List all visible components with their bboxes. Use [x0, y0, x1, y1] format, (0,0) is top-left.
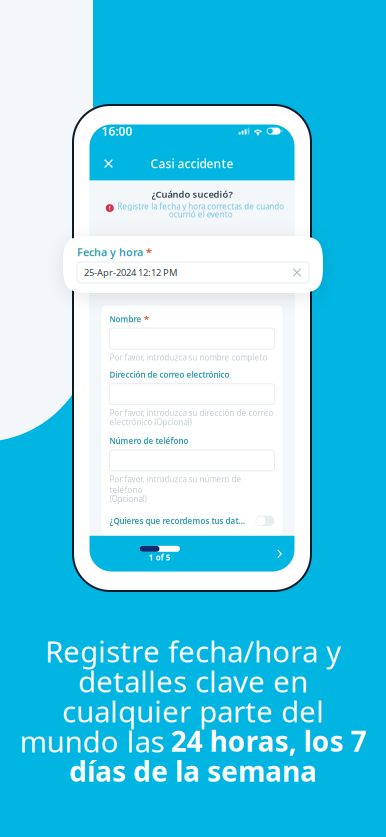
- staticText: Nombre: [109, 314, 141, 324]
- button[interactable]: ¿Quieres que recordemos tus datos?: [109, 514, 274, 528]
- staticText: mundo las: [19, 721, 164, 760]
- button[interactable]: Clear date and time: [289, 264, 305, 280]
- staticText: Dirección de correo electrónico: [109, 369, 229, 380]
- staticText: electrónico (Opcional): [109, 417, 191, 427]
- staticText: Fecha y hora: [77, 245, 143, 259]
- staticText: *: [144, 313, 149, 325]
- staticText: días de la semana: [69, 752, 317, 790]
- staticText: Por favor, introduzca su nombre completo: [109, 352, 267, 363]
- staticText: (Opcional): [109, 494, 146, 504]
- staticText: Casi accidente: [150, 156, 233, 171]
- button[interactable]: Next step: [270, 545, 288, 563]
- staticText: Por favor, introduzca su dirección de co…: [109, 408, 273, 418]
- staticText: 24 horas, los 7: [170, 722, 366, 760]
- staticText: 16:00: [101, 123, 132, 139]
- staticText: Registre la fecha y hora correctas de cu…: [117, 201, 284, 212]
- staticText: *: [146, 245, 152, 259]
- staticText: ¿Cuándo sucedió?: [151, 188, 232, 200]
- staticText: 25-Apr-2024 12:12 PM: [84, 266, 177, 279]
- staticText: detalles clave en: [78, 661, 308, 700]
- staticText: Por favor, introduzca su número de teléf…: [109, 474, 241, 495]
- staticText: Registre fecha/hora y: [45, 631, 341, 670]
- staticText: Número de teléfono: [109, 436, 188, 446]
- staticText: 1 of 5: [149, 552, 171, 563]
- button[interactable]: Close: [96, 151, 120, 177]
- staticText: ¿Quieres que recordemos tus datos?: [109, 515, 247, 526]
- staticText: ocurrió el evento: [169, 209, 233, 220]
- staticText: cualquier parte del: [62, 691, 324, 730]
